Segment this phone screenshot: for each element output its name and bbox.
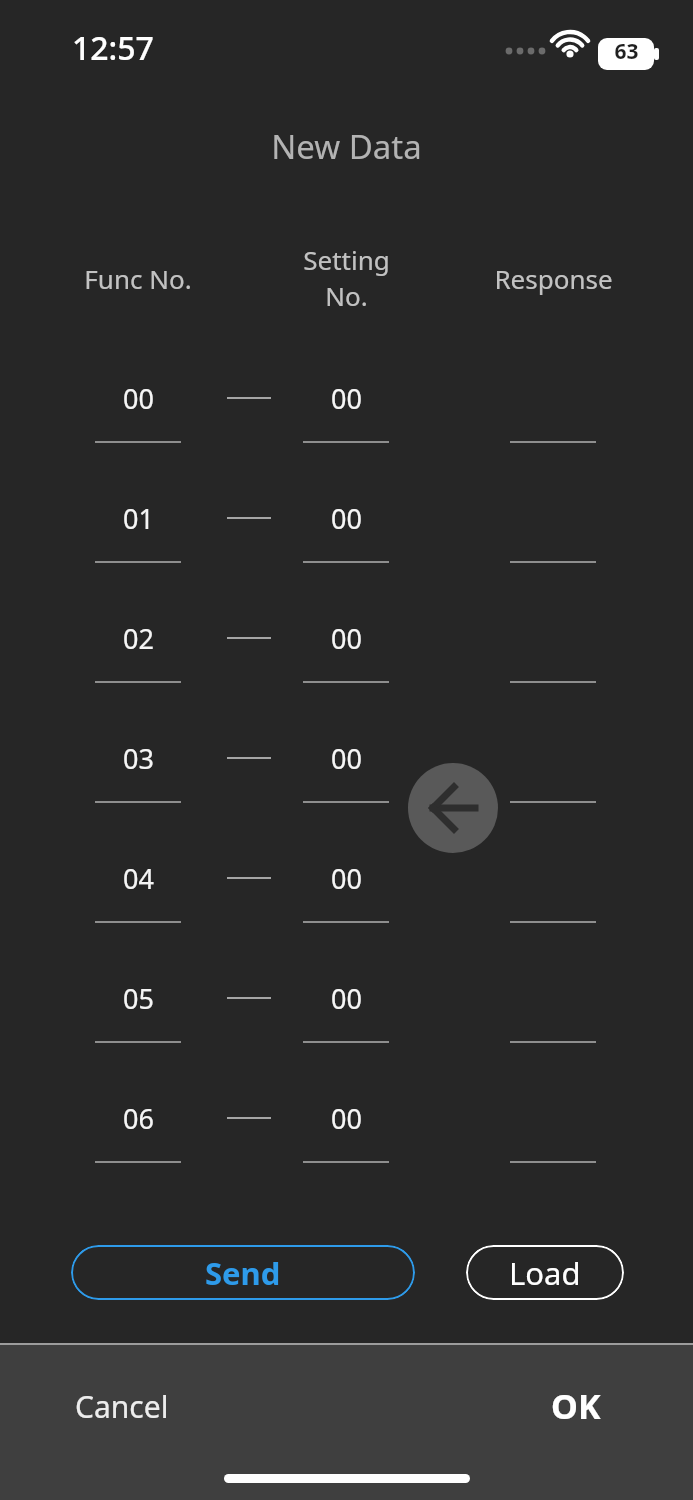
- staticText: 00: [331, 500, 362, 537]
- staticText: 00: [331, 620, 362, 657]
- staticText: 00: [331, 740, 362, 777]
- button[interactable]: Back: [408, 763, 498, 853]
- staticText: New Data: [271, 124, 422, 169]
- staticText: 12:57: [72, 26, 154, 70]
- staticText: OK: [551, 1383, 601, 1429]
- staticText: Load: [509, 1252, 581, 1294]
- staticText: Func No.: [84, 261, 192, 296]
- staticText: Cancel: [75, 1386, 169, 1427]
- button[interactable]: Cancel: [40, 1368, 240, 1444]
- staticText: 00: [331, 980, 362, 1017]
- staticText: 63: [614, 37, 639, 66]
- staticText: Send: [205, 1252, 281, 1294]
- staticText: 05: [123, 980, 154, 1017]
- button[interactable]: Send: [71, 1245, 415, 1300]
- staticText: 00: [331, 380, 362, 417]
- staticText: 04: [123, 860, 154, 897]
- staticText: Response: [494, 261, 613, 296]
- button[interactable]: OK: [488, 1368, 663, 1444]
- staticText: 00: [331, 1100, 362, 1137]
- button[interactable]: Load: [466, 1245, 624, 1300]
- staticText: 00: [123, 380, 154, 417]
- staticText: 00: [331, 860, 362, 897]
- staticText: 03: [123, 740, 154, 777]
- staticText: 02: [123, 620, 154, 657]
- staticText: 01: [123, 500, 154, 537]
- staticText: 06: [123, 1100, 154, 1137]
- staticText: Setting No.: [303, 242, 390, 314]
